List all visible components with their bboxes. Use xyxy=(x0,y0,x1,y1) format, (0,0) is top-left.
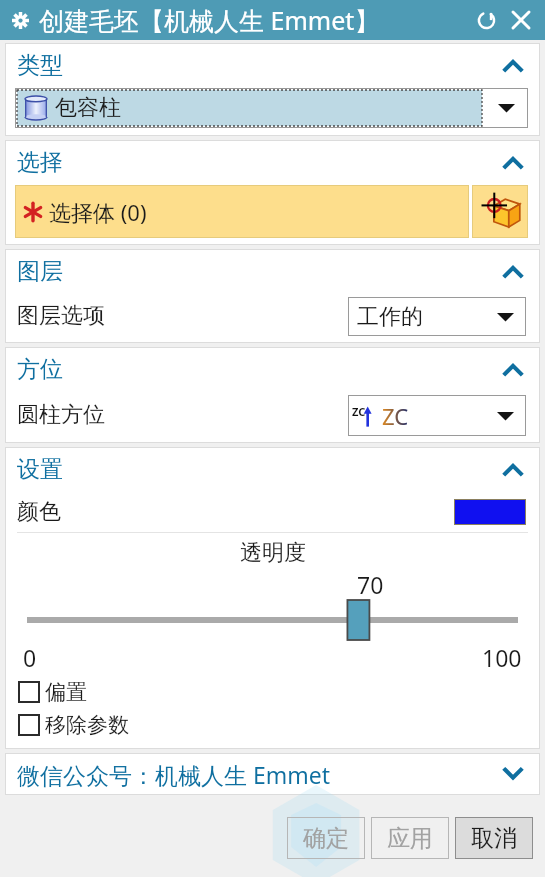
staticText: 设置 xyxy=(17,455,63,484)
staticText: 70 xyxy=(357,569,384,600)
staticText: 图层选项 xyxy=(17,302,105,330)
staticText: 工作的 xyxy=(357,303,423,331)
staticText: 类型 xyxy=(17,51,63,80)
staticText: 偏置 xyxy=(45,679,87,705)
button[interactable]: 方位 xyxy=(5,347,540,392)
staticText: 透明度 xyxy=(240,539,306,567)
staticText: 微信公众号：机械人生 Emmet xyxy=(17,759,331,790)
staticText: 0 xyxy=(23,642,37,673)
staticText: 应用 xyxy=(387,824,433,853)
staticText: 确定 xyxy=(303,824,349,853)
button[interactable]: 类型 xyxy=(5,43,540,88)
staticText: 方位 xyxy=(17,355,63,384)
button[interactable]: 微信公众号：机械人生 Emmet xyxy=(5,753,540,795)
button[interactable]: Reset xyxy=(471,5,501,35)
button[interactable]: 设置 xyxy=(5,447,540,492)
staticText: 颜色 xyxy=(17,498,61,526)
staticText: 取消 xyxy=(471,824,517,853)
staticText: 100 xyxy=(482,642,522,673)
button[interactable]: 工作的 xyxy=(348,297,526,336)
staticText: 包容柱 xyxy=(55,94,121,122)
staticText: 选择体 (0) xyxy=(49,197,147,227)
button[interactable]: 选择 xyxy=(5,140,540,185)
button[interactable]: 确定 xyxy=(287,817,365,859)
staticText: ZC xyxy=(352,404,366,419)
staticText: 移除参数 xyxy=(45,712,129,738)
button[interactable]: Select body xyxy=(472,185,528,238)
button[interactable]: ZC xyxy=(348,395,526,436)
button[interactable]: Options xyxy=(8,8,32,32)
button[interactable]: Close xyxy=(505,4,537,36)
button[interactable]: 选择体 (0) xyxy=(15,185,469,238)
button[interactable]: 应用 xyxy=(371,817,449,859)
button[interactable]: 取消 xyxy=(455,817,533,859)
staticText: 圆柱方位 xyxy=(17,401,105,429)
staticText: 图层 xyxy=(17,257,63,286)
button[interactable]: 图层 xyxy=(5,249,540,294)
button[interactable]: 移除参数 xyxy=(5,708,540,741)
staticText: 创建毛坯【机械人生 Emmet】 xyxy=(39,3,380,37)
staticText: 选择 xyxy=(17,148,63,177)
button[interactable]: Color xyxy=(454,499,526,525)
button[interactable]: 偏置 xyxy=(5,675,540,708)
staticText: ZC xyxy=(382,401,409,431)
button[interactable]: 包容柱 xyxy=(15,88,528,128)
